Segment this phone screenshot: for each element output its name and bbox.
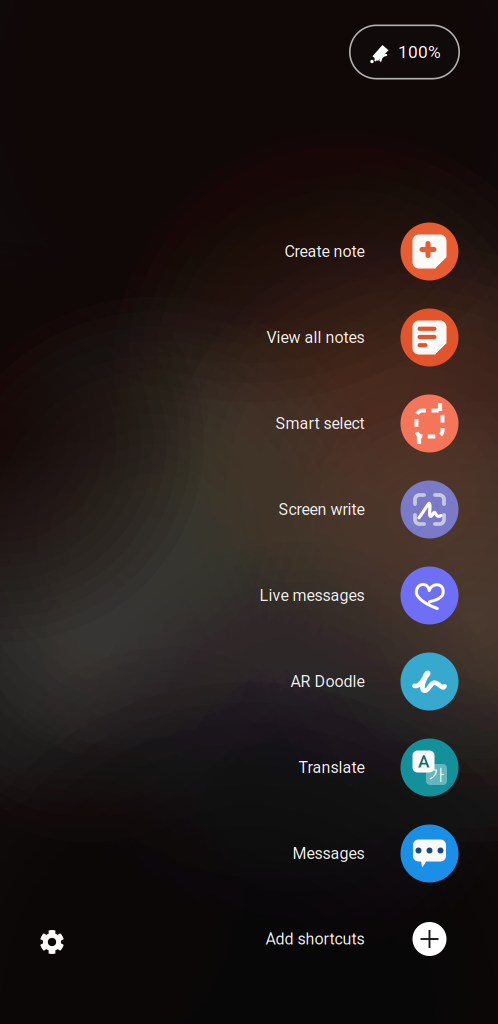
staticText: Live messages [259,586,364,605]
button[interactable]: View all notes [0,294,498,380]
button[interactable]: Smart select [0,380,498,466]
button[interactable]: Live messages [0,552,498,638]
staticText: AR Doodle [290,672,364,691]
button[interactable]: Settings [25,915,79,969]
button[interactable]: 100% [349,24,460,79]
staticText: 100% [398,42,441,62]
button[interactable]: Screen write [0,466,498,552]
staticText: Create note [284,242,364,261]
staticText: Screen write [278,500,364,519]
staticText: 가 [428,764,444,785]
button[interactable]: Create note [0,208,498,294]
button[interactable]: Messages [0,810,498,896]
staticText: Messages [292,844,364,863]
button[interactable]: AR Doodle [0,638,498,724]
staticText: Smart select [275,414,364,433]
button[interactable]: Translate [0,724,498,810]
staticText: View all notes [266,328,364,347]
staticText: Add shortcuts [265,930,364,948]
button[interactable]: Add shortcuts [0,896,498,982]
staticText: A [418,751,429,772]
staticText: Translate [298,758,364,777]
